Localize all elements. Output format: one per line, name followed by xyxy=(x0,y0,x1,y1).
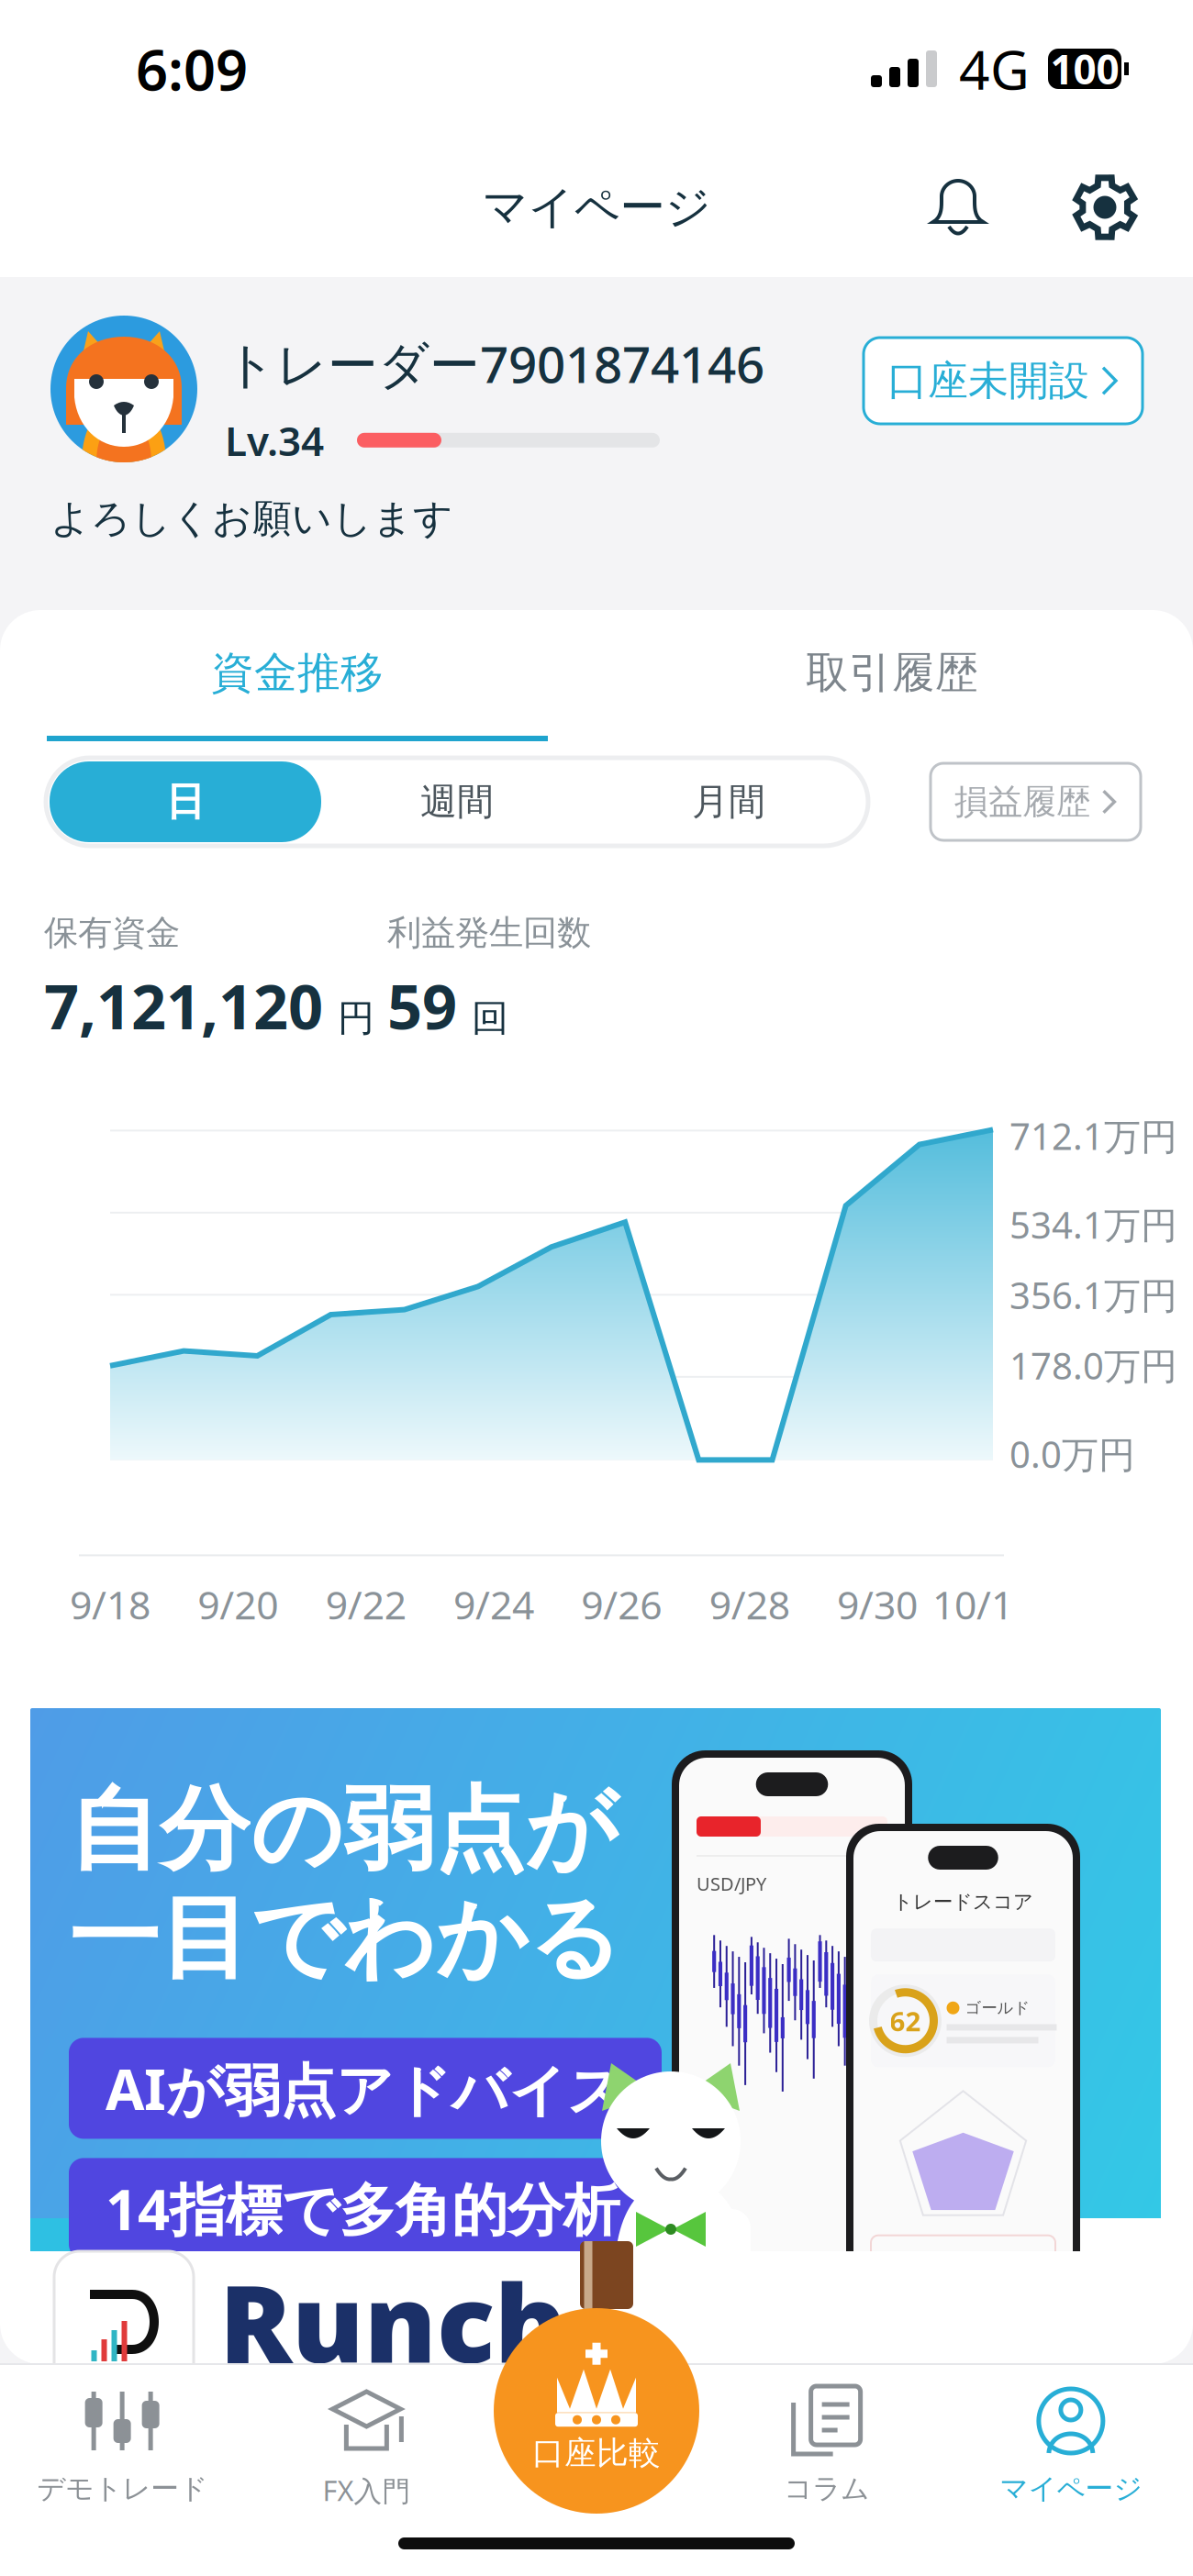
button[interactable]: 設定 xyxy=(1052,154,1158,261)
staticText: Lv.34 xyxy=(225,413,324,467)
staticText: 9/24 xyxy=(453,1578,534,1630)
staticText: マイページ xyxy=(1000,2471,1142,2506)
staticText: 取引履歴 xyxy=(806,647,978,699)
staticText: 9/28 xyxy=(709,1578,790,1630)
staticText: 7,121,120 xyxy=(44,965,323,1046)
staticText: 回 xyxy=(472,996,508,1041)
staticText: 9/26 xyxy=(581,1578,662,1630)
button[interactable]: 損益履歴 xyxy=(931,763,1141,840)
staticText: 0.0万円 xyxy=(1009,1430,1135,1478)
staticText: Runch xyxy=(219,2250,567,2392)
staticText: ゴールド xyxy=(965,1998,1030,2018)
staticText: 月間 xyxy=(692,779,765,824)
staticText: 59 xyxy=(387,965,457,1046)
staticText: マイページ xyxy=(482,180,711,235)
staticText: 178.0万円 xyxy=(1009,1341,1177,1389)
button[interactable]: FX入門 xyxy=(244,2365,489,2576)
staticText: 100 xyxy=(1050,42,1119,96)
staticText: トレーダー7901874146 xyxy=(225,330,764,397)
staticText: 9/30 xyxy=(837,1578,918,1630)
button[interactable]: 口座未開設 xyxy=(864,338,1143,424)
staticText: コラム xyxy=(784,2471,869,2506)
button[interactable]: コラム xyxy=(704,2365,949,2576)
staticText: AIが弱点アドバイス xyxy=(106,2051,625,2126)
button[interactable]: 口座比較 xyxy=(494,2308,699,2514)
button[interactable]: 日 xyxy=(50,761,321,842)
staticText: 356.1万円 xyxy=(1009,1270,1177,1319)
staticText: 利益発生回数 xyxy=(387,912,591,954)
staticText: FX入門 xyxy=(322,2471,411,2509)
button[interactable]: 取引履歴 xyxy=(595,610,1189,741)
staticText: 口座比較 xyxy=(532,2434,661,2473)
staticText: よろしくお願いします xyxy=(50,494,453,543)
staticText: 6:09 xyxy=(136,31,248,106)
staticText: 一目でわかる xyxy=(69,1883,621,1994)
button[interactable]: デモトレード xyxy=(0,2365,244,2576)
staticText: 保有資金 xyxy=(44,912,180,954)
staticText: 口座未開設 xyxy=(887,356,1089,405)
button[interactable]: 通知 xyxy=(905,154,1011,261)
staticText: 資金推移 xyxy=(211,647,384,699)
staticText: 712.1万円 xyxy=(1009,1111,1177,1160)
button[interactable]: マイページ xyxy=(949,2365,1193,2576)
button[interactable]: USD/JPY xyxy=(30,1708,1161,2365)
staticText: 534.1万円 xyxy=(1009,1200,1177,1249)
staticText: 62 xyxy=(890,2003,921,2039)
staticText: 週間 xyxy=(420,779,494,824)
staticText: デモトレード xyxy=(37,2471,207,2506)
button[interactable]: 月間 xyxy=(593,761,864,842)
staticText: USD/JPY xyxy=(697,1871,766,1896)
staticText: 14指標で多角的分析 xyxy=(106,2171,619,2246)
staticText: 日 xyxy=(166,778,205,826)
staticText: 損益履歴 xyxy=(954,781,1090,823)
button[interactable]: 週間 xyxy=(321,761,593,842)
staticText: 10/1 xyxy=(932,1578,1013,1630)
staticText: 9/22 xyxy=(326,1578,406,1630)
staticText: トレードスコア xyxy=(893,1890,1033,1914)
button[interactable]: 資金推移 xyxy=(0,610,595,741)
staticText: 自分の弱点が xyxy=(69,1774,618,1885)
staticText: 円 xyxy=(338,996,374,1041)
staticText: 4G xyxy=(959,33,1030,104)
staticText: 9/18 xyxy=(70,1578,151,1630)
staticText: 9/20 xyxy=(198,1578,278,1630)
